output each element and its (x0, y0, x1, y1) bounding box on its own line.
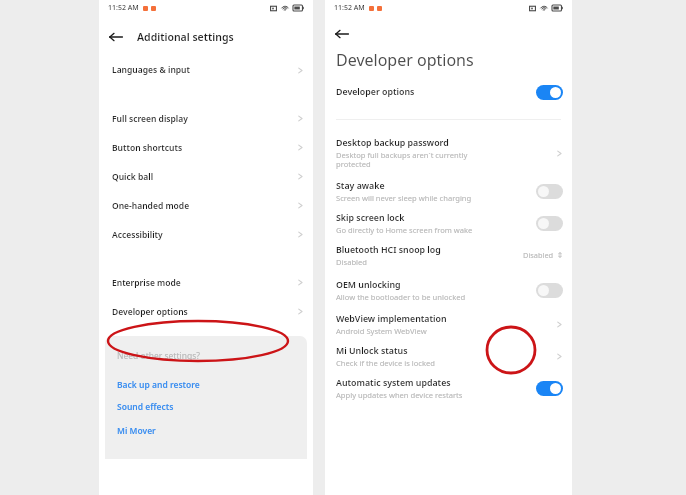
staticText: Back up and restore (117, 379, 200, 391)
staticText: Mi Mover (117, 425, 156, 437)
button[interactable]: Desktop backup password (325, 136, 572, 171)
button[interactable]: Back (331, 23, 353, 45)
button[interactable]: Full screen display (99, 104, 313, 133)
staticText: Apply updates when device restarts (336, 390, 496, 400)
button[interactable]: Back (105, 26, 127, 48)
button[interactable]: Toggle (536, 184, 563, 199)
button[interactable]: Button shortcuts (99, 133, 313, 162)
staticText: Allow the bootloader to be unlocked (336, 292, 496, 302)
button[interactable]: Accessibility (99, 220, 313, 249)
staticText: Need other settings? (117, 350, 200, 362)
staticText: Enterprise mode (112, 277, 181, 289)
staticText: Languages & input (112, 64, 190, 76)
staticText: Sound effects (117, 401, 174, 413)
button[interactable]: One-handed mode (99, 191, 313, 220)
button[interactable]: Bluetooth HCI snoop log (325, 242, 572, 268)
staticText: Screen will never sleep while charging (336, 193, 496, 203)
button[interactable]: Sound effects (105, 395, 307, 419)
staticText: WebView implementation (336, 313, 447, 325)
staticText: 11:52 AM (334, 3, 365, 13)
staticText: Disabled (523, 250, 554, 260)
staticText: Button shortcuts (112, 142, 183, 154)
button[interactable]: OEM unlocking (325, 277, 572, 303)
staticText: Bluetooth HCI snoop log (336, 244, 441, 256)
button[interactable]: Stay awake (325, 178, 572, 204)
button[interactable]: Back up and restore (105, 374, 307, 395)
staticText: Developer options (336, 86, 415, 98)
button[interactable]: Toggle (536, 381, 563, 396)
staticText: Full screen display (112, 113, 188, 125)
button[interactable]: Developer options (325, 81, 572, 103)
button[interactable]: WebView implementation (325, 311, 572, 337)
button[interactable]: Mi Unlock status (325, 343, 572, 369)
button[interactable]: Toggle (536, 85, 563, 100)
staticText: 11:52 AM (108, 3, 139, 13)
button[interactable]: Skip screen lock (325, 210, 572, 236)
button[interactable]: Toggle (536, 283, 563, 298)
staticText: Desktop full backups aren`t currently pr… (336, 150, 488, 170)
staticText: Automatic system updates (336, 377, 451, 389)
button[interactable]: Languages & input (99, 56, 313, 84)
button[interactable]: Automatic system updates (325, 375, 572, 401)
staticText: Developer options (336, 49, 474, 71)
button[interactable]: Toggle (536, 216, 563, 231)
staticText: Accessibility (112, 229, 163, 241)
staticText: Go directly to Home screen from wake (336, 225, 496, 235)
staticText: Disabled (336, 257, 496, 267)
staticText: Check if the device is locked (336, 358, 496, 368)
staticText: Mi Unlock status (336, 345, 408, 357)
staticText: Developer options (112, 306, 188, 318)
staticText: Quick ball (112, 171, 154, 183)
staticText: Android System WebView (336, 326, 496, 336)
staticText: Desktop backup password (336, 137, 449, 149)
button[interactable]: Quick ball (99, 162, 313, 191)
staticText: Skip screen lock (336, 212, 405, 224)
staticText: Additional settings (137, 30, 234, 44)
staticText: OEM unlocking (336, 279, 401, 291)
staticText: Stay awake (336, 180, 385, 192)
button[interactable]: Mi Mover (105, 419, 307, 443)
button[interactable]: Developer options (99, 297, 313, 326)
staticText: One-handed mode (112, 200, 190, 212)
button[interactable]: Enterprise mode (99, 268, 313, 297)
